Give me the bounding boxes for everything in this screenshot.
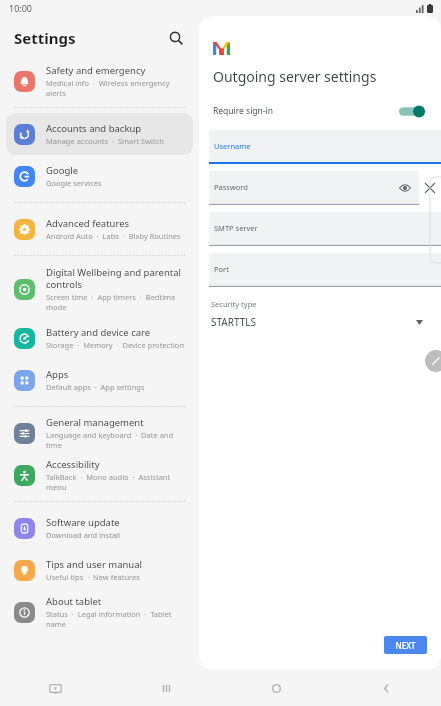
staticText: Software update [46, 516, 120, 529]
button[interactable]: home [221, 670, 331, 706]
button[interactable]: General management [6, 412, 193, 454]
button[interactable]: back [331, 670, 441, 706]
staticText: Default apps · App settings [46, 382, 145, 392]
button[interactable]: Battery and device care [6, 317, 193, 359]
staticText: Digital Wellbeing and parental controls [46, 266, 185, 291]
button[interactable]: Tips and user manual [6, 549, 193, 591]
staticText: Accounts and backup [46, 122, 142, 135]
staticText: Tips and user manual [46, 558, 143, 571]
button[interactable]: SMTP server [209, 212, 441, 246]
staticText: General management [46, 416, 144, 429]
staticText: SMTP server [214, 223, 258, 233]
staticText: Require sign-in [213, 105, 274, 117]
staticText: Outgoing server settings [213, 67, 377, 86]
staticText: Medical info · Wireless emergency alerts [46, 78, 185, 98]
staticText: Screen time · App timers · Bedtime mode [46, 292, 185, 312]
button[interactable]: STARTTLS [199, 313, 441, 331]
staticText: Manage accounts · Smart Switch [46, 136, 164, 146]
staticText: Port [214, 264, 229, 274]
staticText: Security type [211, 299, 257, 309]
button[interactable]: Software update [6, 507, 193, 549]
button[interactable]: recents [111, 670, 221, 706]
staticText: Advanced features [46, 217, 130, 230]
staticText: Storage · Memory · Device protection [46, 340, 185, 350]
button[interactable]: Require sign-in [199, 100, 441, 122]
staticText: Battery and device care [46, 326, 151, 339]
staticText: 10:00 [9, 2, 33, 14]
staticText: Download and install [46, 530, 120, 540]
button[interactable]: Advanced features [6, 208, 193, 250]
button[interactable]: Port [209, 253, 441, 287]
staticText: Apps [46, 368, 69, 381]
button[interactable]: Apps [6, 359, 193, 401]
staticText: Safety and emergency [46, 64, 146, 77]
staticText: Settings [14, 28, 76, 48]
staticText: Google services [46, 178, 102, 188]
button[interactable]: Password [209, 171, 419, 205]
staticText: NEXT [395, 640, 416, 651]
button[interactable]: Show password [397, 180, 413, 196]
button[interactable]: Username [209, 130, 441, 164]
button[interactable]: NEXT [384, 636, 427, 654]
button[interactable]: keyboard [0, 670, 111, 706]
staticText: Status · Legal information · Tablet name [46, 609, 185, 629]
button[interactable]: Clear [419, 177, 441, 199]
staticText: Password [214, 182, 248, 192]
staticText: Username [214, 141, 251, 151]
button[interactable]: Safety and emergency [6, 60, 193, 102]
button[interactable]: Digital Wellbeing and parental controls [6, 261, 193, 317]
button[interactable]: Accounts and backup [6, 113, 193, 155]
button[interactable]: Accessibility [6, 454, 193, 496]
staticText: Language and keyboard · Date and time [46, 430, 185, 450]
staticText: Android Auto · Labs · Bixby Routines [46, 231, 181, 241]
staticText: Google [46, 164, 79, 177]
button[interactable]: Edit [425, 350, 441, 372]
staticText: Accessibility [46, 458, 100, 471]
button[interactable]: About tablet [6, 591, 193, 633]
staticText: TalkBack · Mono audio · Assistant menu [46, 472, 185, 492]
staticText: Useful tips · New features [46, 572, 140, 582]
button[interactable]: Search [163, 25, 189, 51]
staticText: About tablet [46, 595, 102, 608]
staticText: STARTTLS [211, 315, 257, 329]
button[interactable]: Google [6, 155, 193, 197]
